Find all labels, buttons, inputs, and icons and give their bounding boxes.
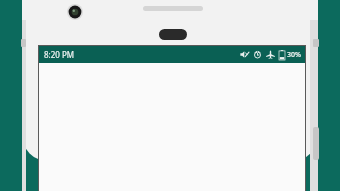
button[interactable]: Volume — [313, 127, 319, 160]
button[interactable]: Power — [313, 39, 319, 47]
staticText: 30% — [287, 50, 301, 60]
staticText: 8:20 PM — [44, 49, 75, 60]
